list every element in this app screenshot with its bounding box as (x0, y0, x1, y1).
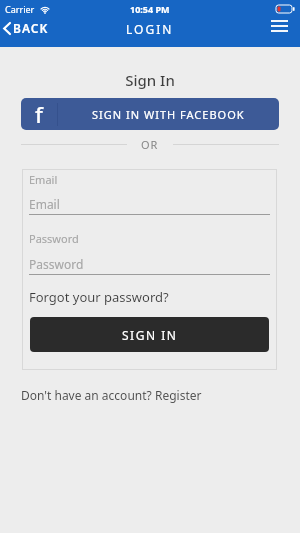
staticText: LOGIN (126, 21, 174, 37)
staticText: Email (29, 172, 58, 187)
staticText: f (35, 99, 43, 129)
staticText: SIGN IN WITH FACEBOOK (92, 107, 245, 122)
staticText: 10:54 PM (130, 3, 170, 15)
staticText: Don't have an account? (21, 387, 155, 403)
staticText: Password (29, 256, 84, 272)
button[interactable]: Forgot your password? (29, 288, 169, 306)
staticText: Sign In (0, 70, 300, 90)
button[interactable]: f (21, 98, 279, 130)
staticText: Carrier (5, 3, 35, 15)
staticText: OR (141, 137, 159, 152)
button[interactable] (271, 20, 288, 32)
staticText: SIGN IN (122, 327, 178, 343)
button[interactable]: SIGN IN (30, 317, 269, 352)
staticText: Email (29, 196, 60, 212)
staticText: Password (29, 231, 79, 246)
button[interactable]: Register (155, 387, 202, 403)
button[interactable]: Email (29, 196, 270, 212)
staticText: BACK (13, 20, 49, 36)
button[interactable]: Password (29, 256, 270, 272)
button[interactable]: BACK (3, 20, 49, 36)
